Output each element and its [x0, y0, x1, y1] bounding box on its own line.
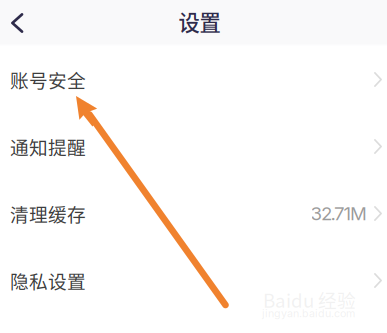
staticText: 通知提醒 — [10, 133, 86, 160]
staticText: 设置 — [178, 6, 220, 37]
button[interactable]: 通知提醒 — [0, 113, 387, 180]
staticText: 账号安全 — [10, 66, 86, 93]
button[interactable]: 账号安全 — [0, 46, 387, 113]
button[interactable]: Back — [0, 0, 37, 46]
staticText: 32.71M — [310, 202, 367, 225]
staticText: 隐私设置 — [10, 267, 86, 294]
staticText: jingyan.baidu.com — [262, 307, 355, 320]
button[interactable]: 隐私设置 — [0, 247, 387, 314]
staticText: 清理缓存 — [10, 200, 86, 227]
staticText: Baidu 经验 — [263, 286, 356, 313]
button[interactable]: 清理缓存 — [0, 180, 387, 247]
